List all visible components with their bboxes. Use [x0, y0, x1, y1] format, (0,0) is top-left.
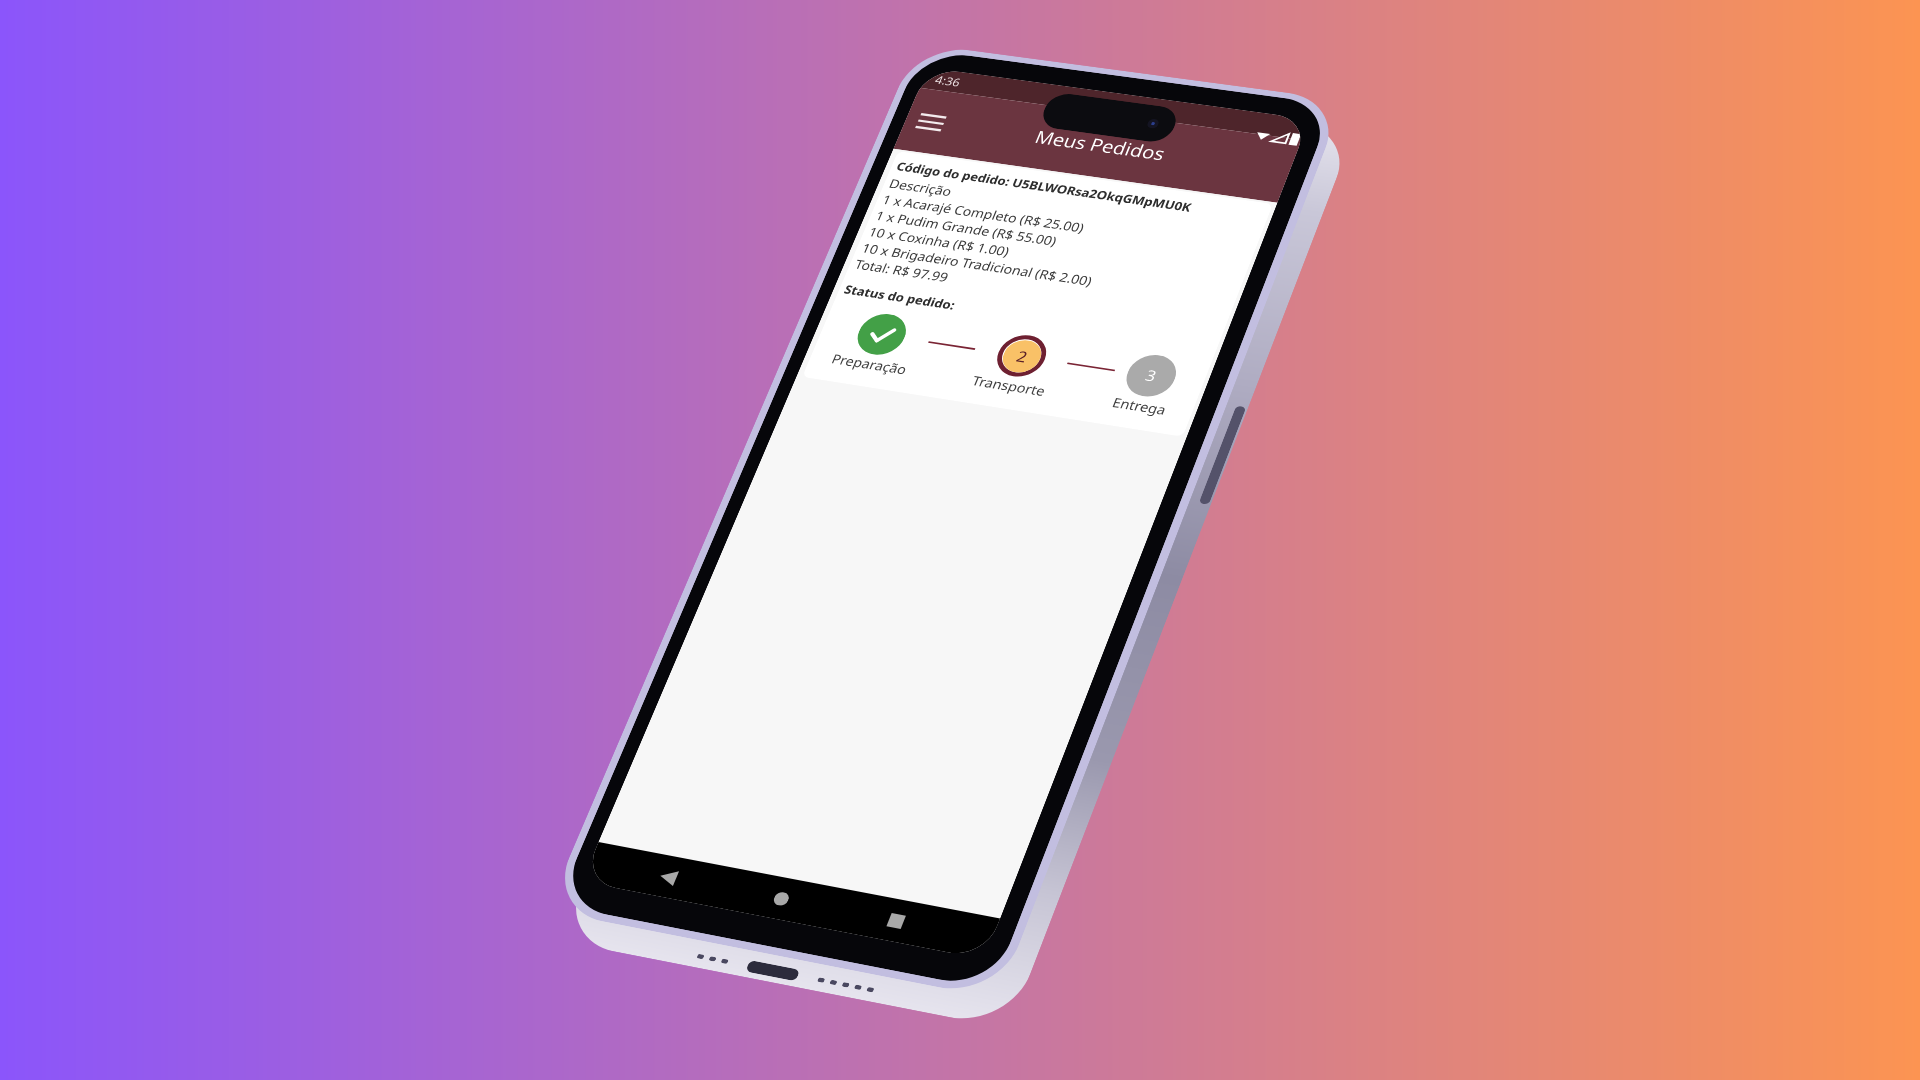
staticText: Status do pedido: [842, 281, 958, 313]
staticText: Total: R$ 97.99 [852, 256, 952, 286]
button[interactable]: Back [640, 854, 696, 900]
staticText: Meus Pedidos [1031, 125, 1169, 166]
staticText: 3 [1142, 365, 1160, 387]
staticText: 10 x Coxinha (R$ 1.00) [866, 223, 1012, 260]
staticText: Entrega [1110, 393, 1169, 418]
staticText: 2 [1013, 346, 1031, 367]
staticText: Descrição [886, 175, 955, 200]
button[interactable]: Home [753, 875, 809, 922]
button[interactable]: Power button [1198, 405, 1246, 505]
staticText: 1 x Acarajé Completo (R$ 25.00) [880, 191, 1088, 236]
staticText: 1 x Pudim Grande (R$ 55.00) [873, 207, 1059, 250]
button[interactable]: Open navigation menu [900, 99, 962, 145]
button[interactable]: Recent apps [867, 897, 924, 944]
staticText: Preparação [829, 349, 910, 378]
staticText: Transporte [970, 371, 1049, 399]
staticText: 4:36 [933, 72, 963, 90]
staticText: Código do pedido: U5BLWORsa2OkqGMpMU0K [894, 158, 1194, 215]
staticText: 10 x Brigadeiro Tradicional (R$ 2.00) [859, 240, 1095, 290]
